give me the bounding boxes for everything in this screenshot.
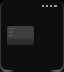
other: Status icons (42, 5, 57, 7)
button[interactable] (7, 26, 34, 45)
